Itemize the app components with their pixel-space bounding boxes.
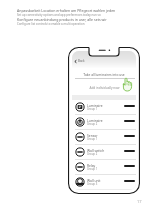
- staticText: Group 1: [87, 167, 98, 171]
- staticText: Konfigure neuanbindung products in user,…: [17, 17, 107, 22]
- staticText: Back: [78, 59, 85, 63]
- staticText: Configure list controls to enable a mult…: [17, 22, 85, 26]
- staticText: Luminaire: [87, 103, 103, 107]
- staticText: Group 3: [87, 182, 98, 186]
- staticText: Wall unit: [87, 178, 101, 182]
- staticText: Sensor: [87, 133, 98, 137]
- staticText: Anpassbarkeit Location erhalten am Pfleg…: [17, 8, 116, 13]
- staticText: Relay: [87, 163, 96, 167]
- staticText: Group 1: [87, 137, 98, 141]
- staticText: Wall switch: [87, 148, 105, 152]
- staticText: Group 1: [87, 107, 98, 111]
- button[interactable]: Luminaire: [72, 100, 136, 114]
- button[interactable]: Back: [73, 58, 86, 64]
- staticText: Group 2: [87, 152, 98, 156]
- staticText: Add individually now: [89, 86, 120, 90]
- staticText: Set up connectivity options and app pref…: [17, 13, 101, 17]
- button[interactable]: Sensor: [72, 130, 136, 144]
- button[interactable]: Take all luminaires into use: [72, 68, 136, 81]
- button[interactable]: Wall switch: [72, 145, 136, 159]
- button[interactable]: Add individually now: [72, 81, 136, 94]
- button[interactable]: Relay: [72, 160, 136, 174]
- staticText: Take all luminaires into use: [83, 73, 125, 77]
- other: Back: [74, 60, 77, 63]
- button[interactable]: Wall unit: [72, 175, 136, 189]
- button[interactable]: Luminaire: [72, 115, 136, 129]
- staticText: Luminaire: [87, 118, 103, 122]
- staticText: Group 2: [87, 122, 98, 126]
- staticText: 17: [137, 199, 142, 204]
